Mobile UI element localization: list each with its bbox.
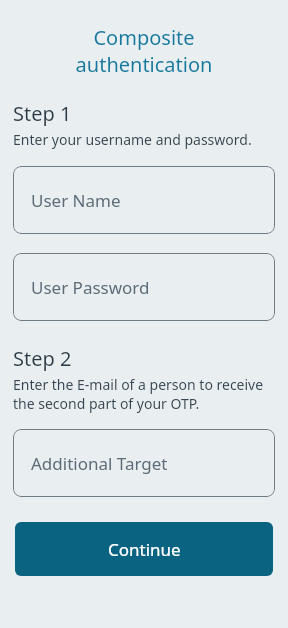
staticText: Composite authentication	[23, 24, 265, 78]
button[interactable]: User Password	[13, 253, 275, 321]
staticText: User Name	[31, 189, 121, 212]
button[interactable]: Additional Target	[13, 429, 275, 497]
button[interactable]: Continue	[15, 522, 273, 576]
button[interactable]: User Name	[13, 166, 275, 234]
staticText: User Password	[31, 276, 150, 299]
staticText: Enter your username and password.	[13, 130, 252, 149]
staticText: Step 1	[13, 100, 72, 127]
staticText: Continue	[108, 538, 181, 561]
staticText: Enter the E-mail of a person to receive …	[13, 375, 275, 413]
staticText: Additional Target	[31, 452, 168, 475]
staticText: Step 2	[13, 345, 72, 372]
